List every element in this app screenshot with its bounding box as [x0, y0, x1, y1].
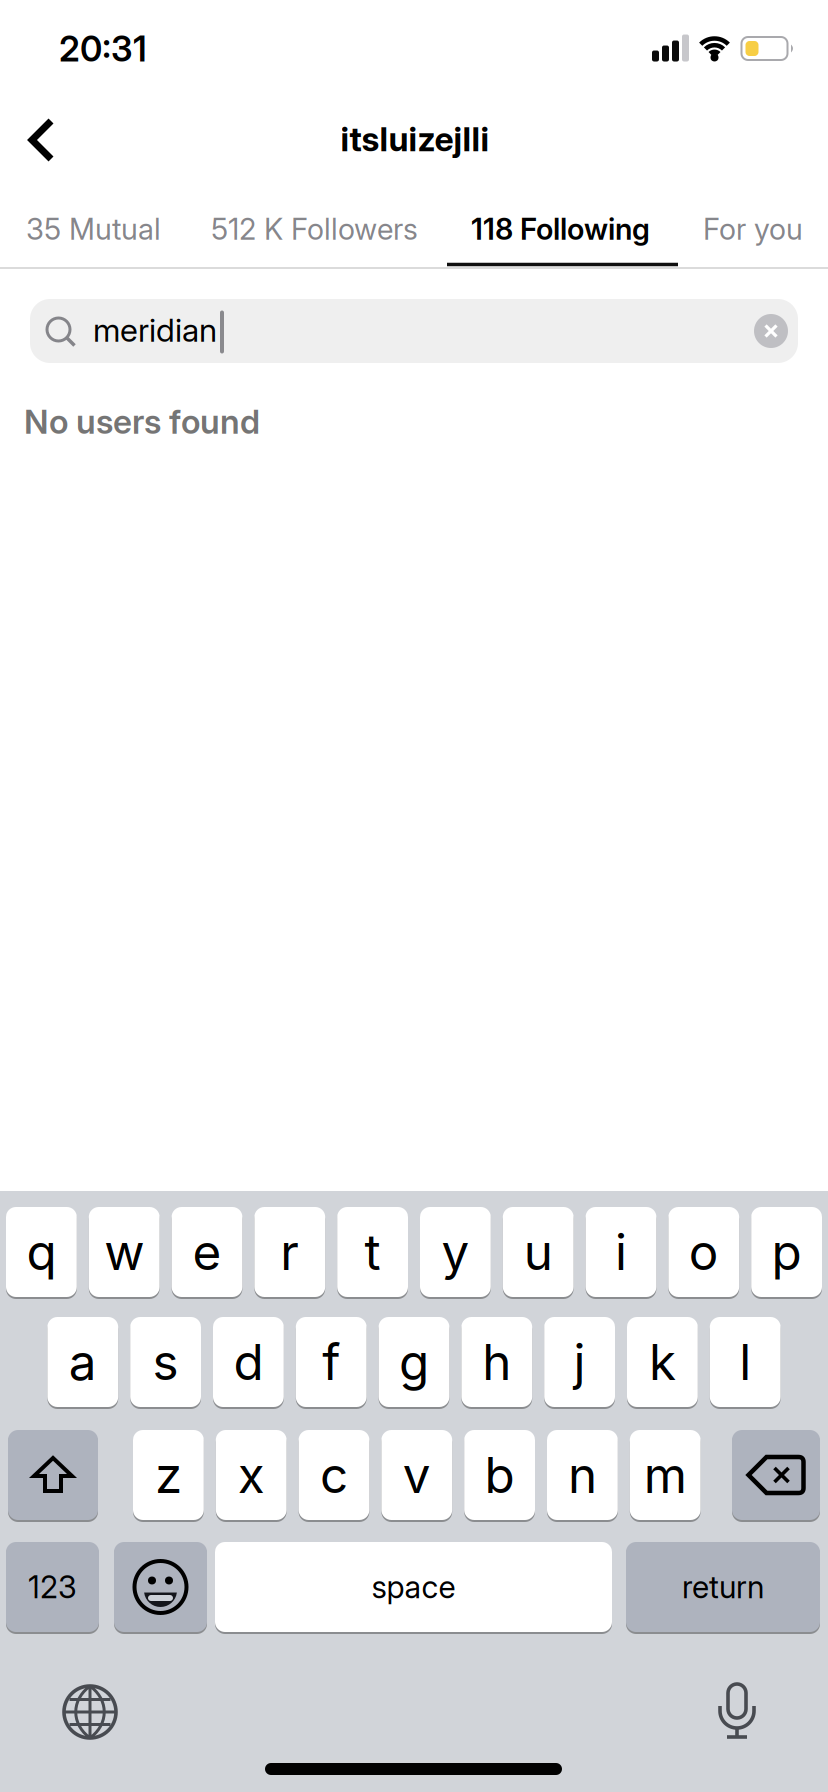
staticText: p: [772, 1223, 802, 1281]
staticText: k: [649, 1333, 676, 1391]
button[interactable]: j: [544, 1317, 615, 1407]
button[interactable]: 35 Mutual: [26, 212, 161, 246]
button[interactable]: Delete: [732, 1430, 820, 1520]
button[interactable]: 123: [6, 1542, 99, 1632]
staticText: l: [739, 1333, 751, 1391]
button[interactable]: l: [710, 1317, 781, 1407]
button[interactable]: 512 K Followers: [211, 212, 418, 246]
button[interactable]: t: [337, 1207, 408, 1297]
staticText: j: [574, 1333, 586, 1391]
button[interactable]: meridian: [30, 299, 798, 363]
staticText: x: [238, 1446, 265, 1504]
button[interactable]: Back: [14, 112, 70, 168]
staticText: meridian: [93, 311, 217, 349]
button[interactable]: e: [172, 1207, 242, 1297]
staticText: d: [233, 1333, 263, 1391]
staticText: space: [371, 1569, 455, 1605]
button[interactable]: q: [6, 1207, 77, 1297]
button[interactable]: h: [461, 1317, 532, 1407]
button[interactable]: For you: [703, 212, 803, 246]
staticText: itsluizejlli: [340, 119, 489, 159]
button[interactable]: g: [379, 1317, 449, 1407]
button[interactable]: i: [586, 1207, 656, 1297]
button[interactable]: Shift: [8, 1430, 98, 1520]
staticText: c: [320, 1446, 348, 1504]
button[interactable]: b: [464, 1430, 535, 1520]
staticText: 123: [28, 1569, 77, 1605]
button[interactable]: f: [296, 1317, 367, 1407]
staticText: No users found: [24, 402, 260, 441]
button[interactable]: n: [547, 1430, 618, 1520]
button[interactable]: y: [420, 1207, 491, 1297]
staticText: 35 Mutual: [26, 212, 161, 246]
staticText: q: [26, 1223, 56, 1281]
staticText: m: [644, 1446, 687, 1504]
button[interactable]: Dictate: [715, 1682, 759, 1740]
button[interactable]: o: [668, 1207, 739, 1297]
staticText: 118 Following: [471, 212, 650, 246]
button[interactable]: Clear search text: [754, 314, 788, 348]
button[interactable]: a: [47, 1317, 118, 1407]
staticText: r: [280, 1223, 299, 1281]
button[interactable]: space: [215, 1542, 612, 1632]
button[interactable]: m: [630, 1430, 701, 1520]
button[interactable]: v: [381, 1430, 452, 1520]
button[interactable]: return: [626, 1542, 820, 1632]
staticText: s: [153, 1333, 179, 1391]
staticText: 512 K Followers: [211, 212, 418, 246]
staticText: y: [441, 1223, 469, 1281]
button[interactable]: Next keyboard: [62, 1684, 118, 1740]
button[interactable]: Emoji: [114, 1542, 207, 1632]
button[interactable]: x: [216, 1430, 287, 1520]
button[interactable]: z: [133, 1430, 204, 1520]
staticText: n: [568, 1446, 597, 1504]
staticText: b: [485, 1446, 515, 1504]
staticText: w: [104, 1223, 144, 1281]
staticText: e: [192, 1223, 221, 1281]
staticText: i: [615, 1223, 627, 1281]
button[interactable]: u: [503, 1207, 574, 1297]
staticText: For you: [703, 212, 803, 246]
staticText: return: [682, 1569, 764, 1605]
button[interactable]: p: [751, 1207, 822, 1297]
button[interactable]: w: [89, 1207, 160, 1297]
staticText: v: [403, 1446, 431, 1504]
staticText: h: [482, 1333, 511, 1391]
staticText: a: [69, 1333, 97, 1391]
button[interactable]: k: [627, 1317, 698, 1407]
button[interactable]: s: [130, 1317, 201, 1407]
button[interactable]: r: [254, 1207, 325, 1297]
staticText: o: [689, 1223, 719, 1281]
staticText: u: [524, 1223, 553, 1281]
staticText: t: [365, 1223, 381, 1281]
staticText: 20:31: [59, 29, 147, 69]
staticText: g: [399, 1333, 429, 1391]
button[interactable]: d: [213, 1317, 284, 1407]
staticText: f: [322, 1333, 340, 1391]
button[interactable]: c: [299, 1430, 369, 1520]
staticText: z: [155, 1446, 182, 1504]
button[interactable]: 118 Following: [471, 212, 650, 246]
